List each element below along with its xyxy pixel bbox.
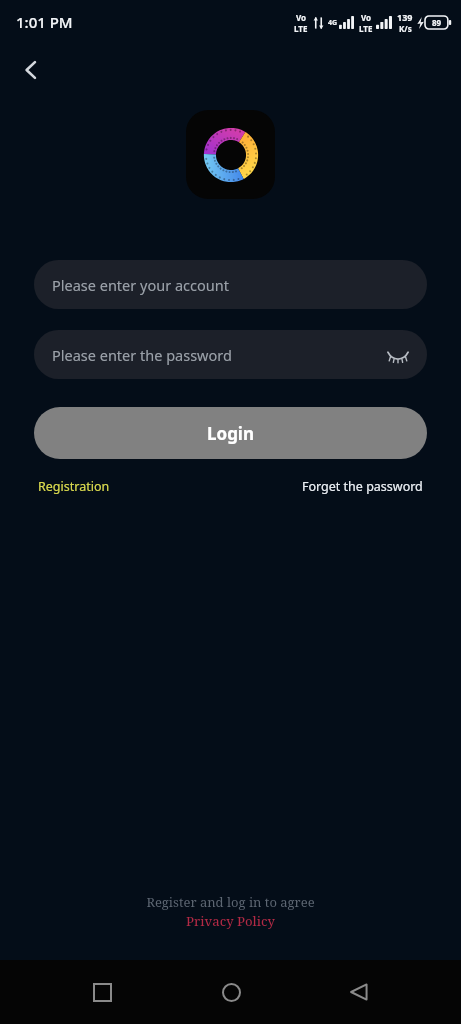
staticText: Please enter the password	[52, 345, 232, 365]
button[interactable]: Forget the password	[302, 478, 423, 495]
staticText: 4G	[328, 18, 338, 28]
button[interactable]: Login	[34, 407, 427, 459]
staticText: Vo	[361, 12, 372, 23]
staticText: LTE	[359, 23, 373, 34]
staticText: Login	[207, 422, 255, 445]
button[interactable]: Please enter your account	[34, 260, 427, 309]
button[interactable]: Back	[10, 44, 52, 96]
staticText: Forget the password	[302, 478, 423, 495]
staticText: K/s	[399, 23, 412, 34]
staticText: 1:01 PM	[16, 12, 73, 32]
button[interactable]: Please enter the password	[34, 330, 427, 379]
staticText: Please enter your account	[52, 275, 229, 295]
button[interactable]: Back	[332, 965, 386, 1019]
button[interactable]: Recent apps	[75, 965, 129, 1019]
button[interactable]: Privacy Policy	[186, 912, 275, 930]
staticText: 139	[397, 11, 413, 23]
button[interactable]: Home	[204, 965, 258, 1019]
staticText: Register and log in to agree	[146, 893, 315, 911]
staticText: Privacy Policy	[186, 912, 275, 930]
button[interactable]: App logo	[186, 110, 275, 199]
button[interactable]: Registration	[38, 478, 110, 495]
staticText: LTE	[294, 23, 308, 34]
staticText: Registration	[38, 478, 110, 495]
button[interactable]: Show password	[383, 340, 413, 370]
staticText: Vo	[296, 12, 307, 23]
staticText: 89	[432, 17, 442, 28]
